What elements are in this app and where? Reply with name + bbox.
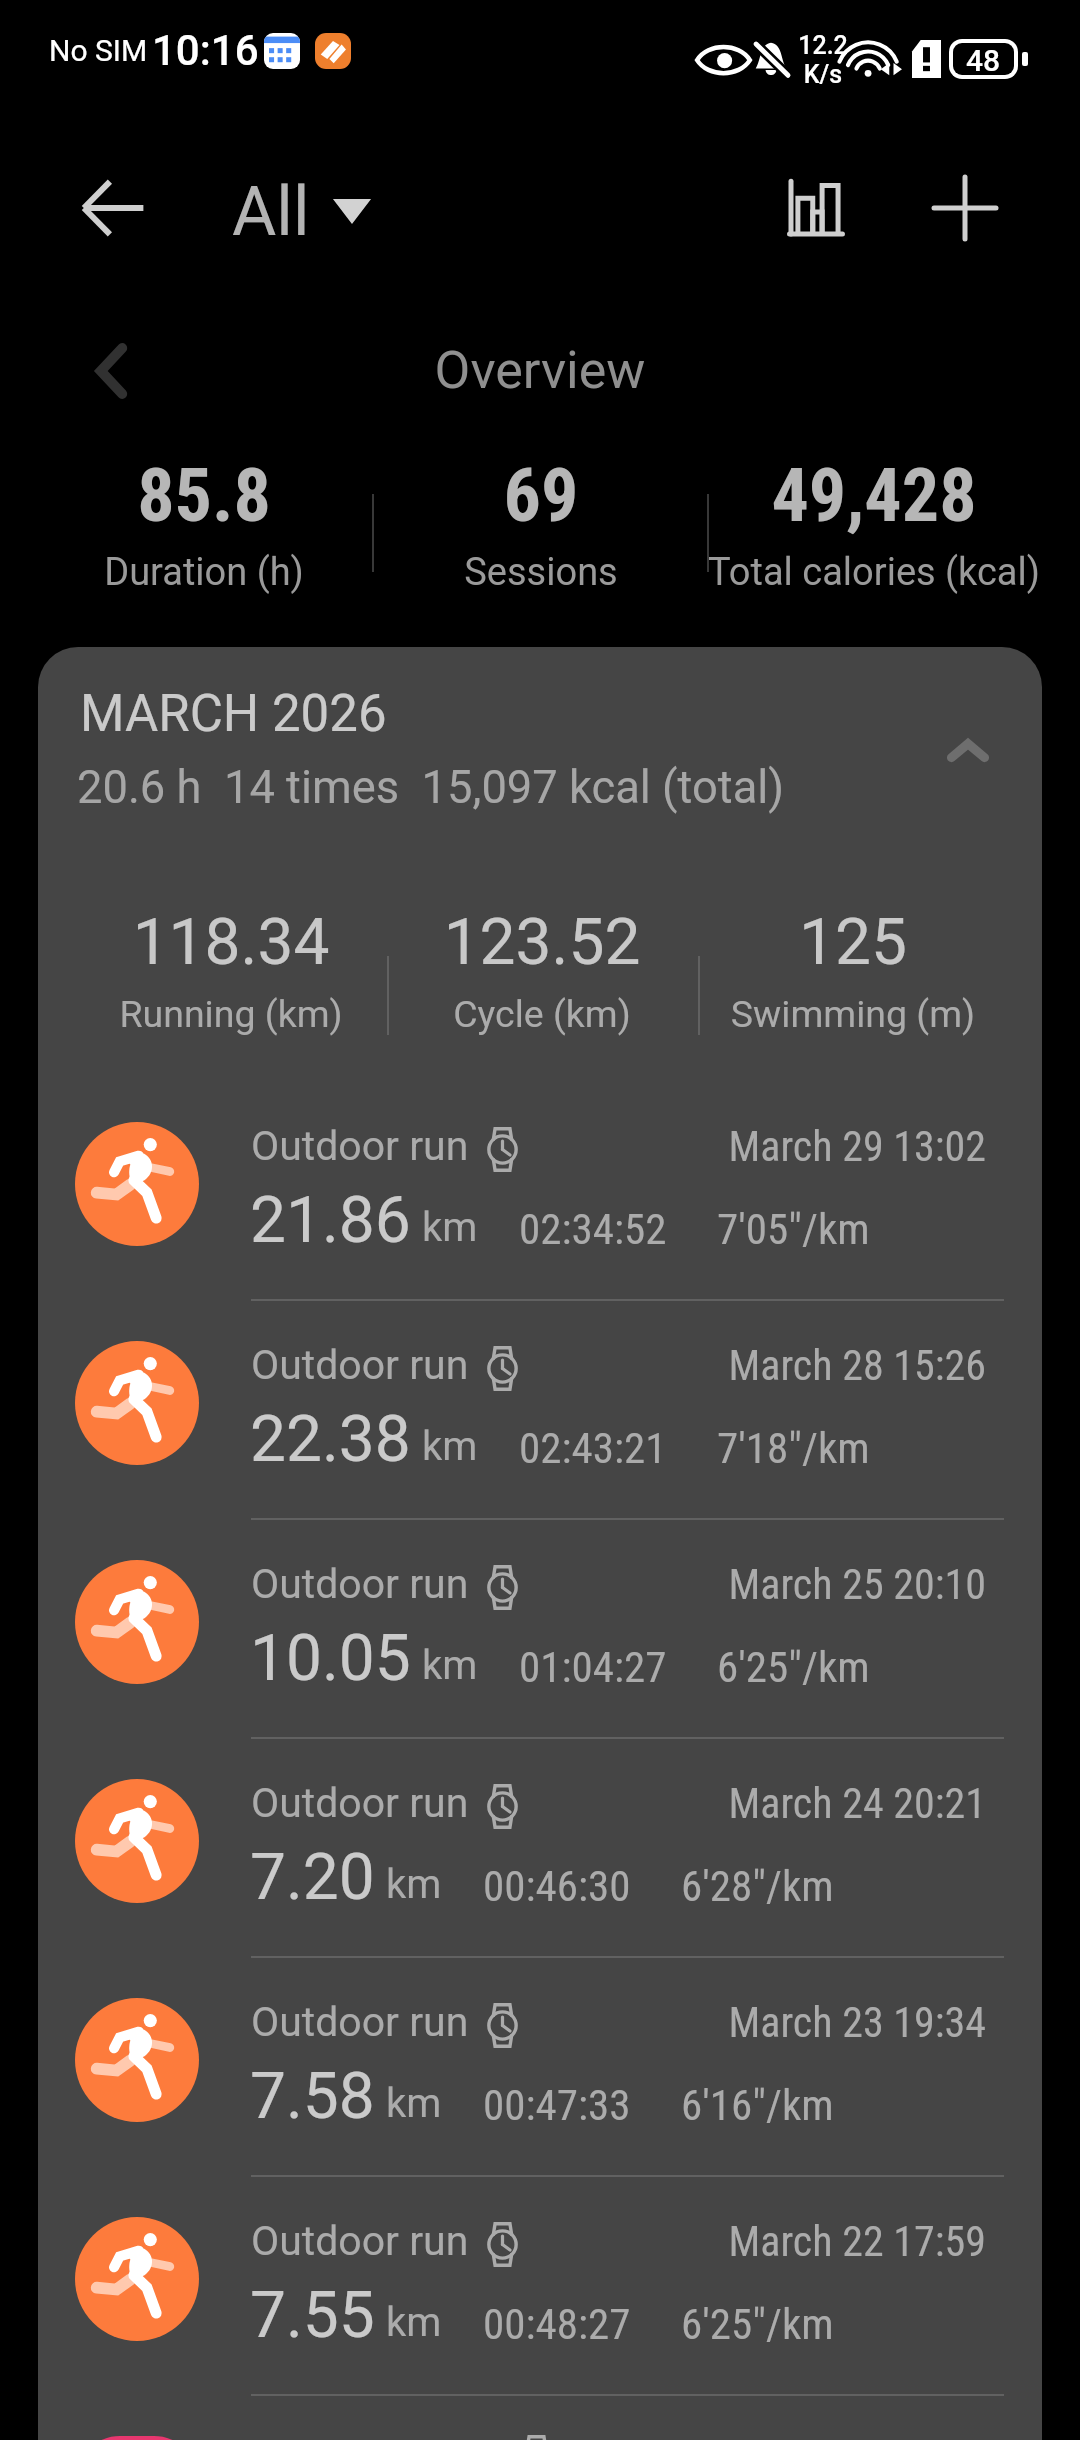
staticText: 49,428	[624, 452, 1080, 539]
button[interactable]: Outdoor run	[38, 1301, 1042, 1518]
button[interactable]: Previous month	[76, 336, 146, 406]
staticText: 69	[291, 452, 791, 539]
staticText: Running (km)	[38, 992, 481, 1036]
staticText: 7'05"/km	[717, 1204, 870, 1254]
staticText: 6'28"/km	[681, 1861, 834, 1911]
staticText: 125	[603, 905, 1042, 980]
staticText: Outdoor run	[251, 1998, 469, 2046]
staticText: K/s	[797, 60, 849, 89]
staticText: 02:34:52	[519, 1204, 667, 1254]
button[interactable]: Statistics	[755, 148, 875, 268]
button[interactable]: All	[232, 172, 368, 252]
staticText: 7.55	[250, 2278, 375, 2353]
staticText: km	[422, 1642, 478, 1689]
staticText: Overview	[0, 340, 1080, 401]
staticText: Sessions	[291, 550, 791, 595]
staticText: km	[386, 2299, 442, 2346]
staticText: 20.6 h 14 times 15,097 kcal (total)	[77, 761, 785, 814]
staticText: 7'18"/km	[717, 1423, 870, 1473]
staticText: Outdoor run	[251, 1122, 469, 1170]
staticText: All	[232, 172, 310, 252]
button[interactable]: Outdoor run	[38, 2177, 1042, 2394]
staticText: March 24 20:21	[38, 1779, 986, 1828]
staticText: Swimming (m)	[603, 992, 1042, 1036]
staticText: 48	[966, 43, 1001, 75]
staticText: km	[386, 1861, 442, 1908]
staticText: 22.38	[250, 1402, 411, 1477]
staticText: 10:16	[152, 26, 259, 75]
staticText: Outdoor run	[251, 1560, 469, 1608]
staticText: km	[422, 1423, 478, 1470]
staticText: 6'25"/km	[681, 2299, 834, 2349]
staticText: 10.05	[250, 1621, 411, 1696]
staticText: Outdoor run	[251, 1341, 469, 1389]
staticText: 12.2	[797, 31, 849, 60]
button[interactable]: Outdoor run	[38, 1082, 1042, 1299]
staticText: km	[422, 1204, 478, 1251]
button[interactable]: Outdoor run	[38, 1520, 1042, 1737]
staticText: km	[386, 2080, 442, 2127]
staticText: March 29 13:02	[38, 1122, 986, 1171]
staticText: March 22 17:59	[38, 2217, 986, 2266]
staticText: 6'25"/km	[717, 1642, 870, 1692]
staticText: 7.20	[250, 1840, 375, 1915]
staticText: 118.34	[38, 905, 481, 980]
staticText: 02:43:21	[519, 1423, 667, 1473]
staticText: 85.8	[0, 452, 454, 539]
staticText: 01:04:27	[519, 1642, 667, 1692]
staticText: MARCH 2026	[80, 684, 387, 744]
button[interactable]: Add	[905, 148, 1025, 268]
staticText: Outdoor run	[251, 2217, 469, 2265]
button[interactable]: Outdoor run	[38, 1739, 1042, 1956]
staticText: 123.52	[292, 905, 792, 980]
staticText: No SIM	[49, 33, 148, 68]
staticText: March 23 19:34	[38, 1998, 986, 2047]
staticText: 00:48:27	[483, 2299, 631, 2349]
staticText: 00:46:30	[483, 1861, 631, 1911]
button[interactable]: Outdoor run	[38, 1958, 1042, 2175]
staticText: Total calories (kcal)	[624, 550, 1080, 595]
staticText: 21.86	[250, 1183, 411, 1258]
staticText: 7.58	[250, 2059, 375, 2134]
staticText: Cycle (km)	[292, 992, 792, 1036]
staticText: Outdoor run	[251, 1779, 469, 1827]
button[interactable]: Collapse	[923, 705, 1013, 795]
button[interactable]: Back	[53, 148, 173, 268]
staticText: March 28 15:26	[38, 1341, 986, 1390]
staticText: Duration (h)	[0, 550, 454, 595]
staticText: March 25 20:10	[38, 1560, 986, 1609]
staticText: 00:47:33	[483, 2080, 631, 2130]
staticText: 6'16"/km	[681, 2080, 834, 2130]
